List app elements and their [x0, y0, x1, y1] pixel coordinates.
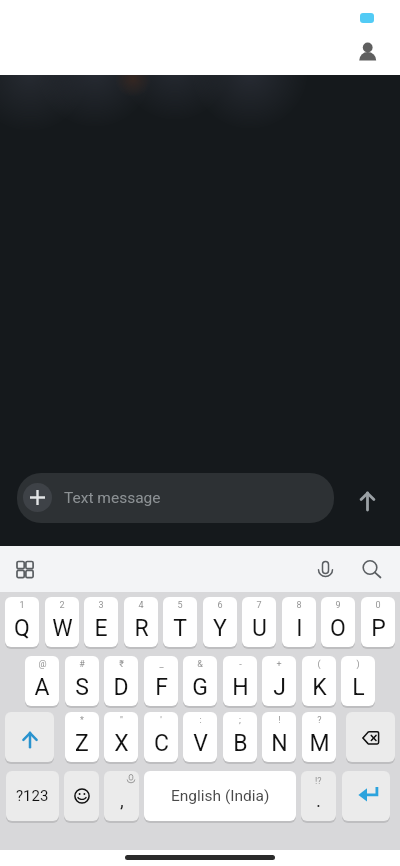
staticText: A	[34, 674, 50, 701]
staticText: 1	[19, 600, 25, 611]
staticText: 6	[217, 600, 223, 611]
button[interactable]: 1	[5, 597, 39, 647]
button[interactable]: 9	[321, 597, 355, 647]
button[interactable]: 0	[361, 597, 395, 647]
staticText: E	[94, 615, 108, 642]
button[interactable]: Account	[356, 36, 379, 59]
staticText: H	[232, 674, 249, 701]
button[interactable]: Shift	[5, 712, 54, 762]
button[interactable]: (	[302, 656, 336, 706]
button[interactable]: Voice input	[310, 557, 341, 588]
staticText: F	[155, 674, 168, 701]
button[interactable]: :	[183, 712, 217, 762]
staticText: :	[199, 715, 202, 726]
button[interactable]: Enter	[342, 771, 390, 821]
button[interactable]: ?123	[6, 771, 59, 821]
staticText: X	[114, 730, 129, 757]
button[interactable]: @	[25, 656, 59, 706]
button[interactable]: 4	[124, 597, 158, 647]
staticText: B	[233, 730, 248, 757]
button[interactable]: "	[104, 712, 138, 762]
staticText: +	[276, 659, 282, 670]
button[interactable]: 3	[84, 597, 118, 647]
button[interactable]: +	[262, 656, 296, 706]
button[interactable]: '	[144, 712, 178, 762]
button[interactable]: Emoji	[64, 771, 99, 821]
button[interactable]: 7	[242, 597, 276, 647]
staticText: #	[79, 659, 85, 670]
staticText: S	[75, 674, 89, 701]
button[interactable]: 6	[203, 597, 237, 647]
staticText: 5	[177, 600, 183, 611]
button[interactable]: .	[301, 771, 336, 821]
staticText: Z	[75, 730, 89, 757]
staticText: English (India)	[171, 787, 270, 805]
button[interactable]: Toolbox	[9, 553, 41, 585]
button[interactable]: !	[262, 712, 296, 762]
staticText: J	[273, 674, 286, 701]
staticText: 9	[335, 600, 341, 611]
button[interactable]: *	[65, 712, 99, 762]
button[interactable]: 5	[163, 597, 197, 647]
staticText: Y	[213, 615, 227, 642]
staticText: ?	[317, 715, 322, 726]
button[interactable]: 8	[282, 597, 316, 647]
staticText: R	[134, 615, 149, 642]
staticText: !?	[315, 776, 322, 787]
button[interactable]: ,	[104, 771, 139, 821]
staticText: .	[316, 789, 322, 811]
staticText: -	[239, 659, 242, 670]
staticText: I	[296, 615, 303, 642]
button[interactable]: Backspace	[346, 712, 395, 762]
button[interactable]: ₹	[104, 656, 138, 706]
staticText: Q	[14, 615, 30, 642]
staticText: C	[154, 730, 169, 757]
button[interactable]: )	[341, 656, 375, 706]
staticText: '	[160, 715, 162, 726]
staticText: K	[312, 674, 327, 701]
button[interactable]: &	[183, 656, 217, 706]
staticText: ?123	[16, 787, 49, 805]
staticText: W	[52, 615, 73, 642]
button[interactable]: Send	[351, 484, 384, 517]
staticText: P	[371, 615, 386, 642]
button[interactable]: -	[223, 656, 257, 706]
staticText: )	[356, 659, 360, 670]
staticText: U	[252, 615, 267, 642]
staticText: 7	[256, 600, 262, 611]
staticText: ;	[239, 715, 241, 726]
staticText: _	[159, 659, 164, 670]
staticText: T	[173, 615, 187, 642]
button[interactable]: Search	[355, 555, 386, 586]
button[interactable]: English (India)	[144, 771, 296, 821]
staticText: (	[317, 659, 321, 670]
staticText: "	[120, 715, 123, 726]
staticText: N	[271, 730, 288, 757]
staticText: 3	[98, 600, 104, 611]
staticText: 4	[138, 600, 144, 611]
staticText: !	[278, 715, 281, 726]
staticText: 8	[296, 600, 302, 611]
staticText: M	[309, 730, 330, 757]
staticText: ₹	[119, 659, 124, 670]
staticText: @	[38, 659, 47, 670]
button[interactable]: ?	[302, 712, 336, 762]
staticText: L	[352, 674, 365, 701]
button[interactable]: ;	[223, 712, 257, 762]
staticText: ,	[120, 789, 124, 811]
staticText: *	[80, 715, 84, 726]
staticText: Text message	[64, 489, 161, 507]
button[interactable]: Add attachment	[23, 483, 52, 512]
staticText: &	[197, 659, 203, 670]
button[interactable]: #	[65, 656, 99, 706]
button[interactable]: 2	[45, 597, 79, 647]
staticText: 0	[375, 600, 381, 611]
staticText: O	[330, 615, 346, 642]
button[interactable]: _	[144, 656, 178, 706]
staticText: D	[113, 674, 129, 701]
staticText: G	[192, 674, 208, 701]
button[interactable]: Add attachment	[17, 473, 334, 523]
staticText: V	[193, 730, 208, 757]
staticText: 2	[59, 600, 65, 611]
